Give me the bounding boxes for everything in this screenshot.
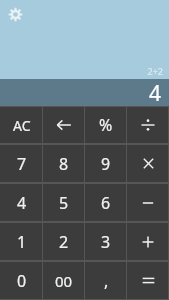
staticText: 9 [101, 153, 111, 175]
staticText: 0 [17, 270, 27, 292]
button[interactable]: 7 [0, 144, 43, 183]
button[interactable]: Plus [127, 222, 169, 261]
button[interactable]: 3 [85, 222, 127, 261]
button[interactable]: 00 [43, 261, 85, 300]
button[interactable]: 1 [0, 222, 43, 261]
button[interactable]: 4 [0, 183, 43, 222]
button[interactable]: Settings [6, 5, 24, 23]
button[interactable]: Equals [127, 261, 169, 300]
staticText: 8 [59, 153, 69, 175]
staticText: 3 [101, 231, 111, 253]
button[interactable]: 8 [43, 144, 85, 183]
staticText: % [99, 114, 113, 136]
button[interactable]: 5 [43, 183, 85, 222]
button[interactable]: Minus [127, 183, 169, 222]
button[interactable]: 6 [85, 183, 127, 222]
staticText: 5 [59, 192, 69, 214]
button[interactable]: AC [0, 106, 43, 144]
staticText: 2 [59, 231, 69, 253]
staticText: 1 [17, 231, 27, 253]
button[interactable]: 0 [0, 261, 43, 300]
button[interactable]: % [85, 106, 127, 144]
staticText: 2+2 [147, 65, 163, 77]
staticText: 00 [55, 271, 73, 291]
button[interactable]: Backspace [43, 106, 85, 144]
staticText: 7 [17, 153, 27, 175]
staticText: AC [13, 116, 31, 135]
staticText: 6 [101, 192, 111, 214]
button[interactable]: Multiply [127, 144, 169, 183]
staticText: 4 [148, 79, 161, 106]
button[interactable]: 9 [85, 144, 127, 183]
staticText: , [104, 270, 109, 292]
button[interactable]: , [85, 261, 127, 300]
button[interactable]: 2 [43, 222, 85, 261]
staticText: 4 [17, 192, 27, 214]
button[interactable]: Divide [127, 106, 169, 144]
